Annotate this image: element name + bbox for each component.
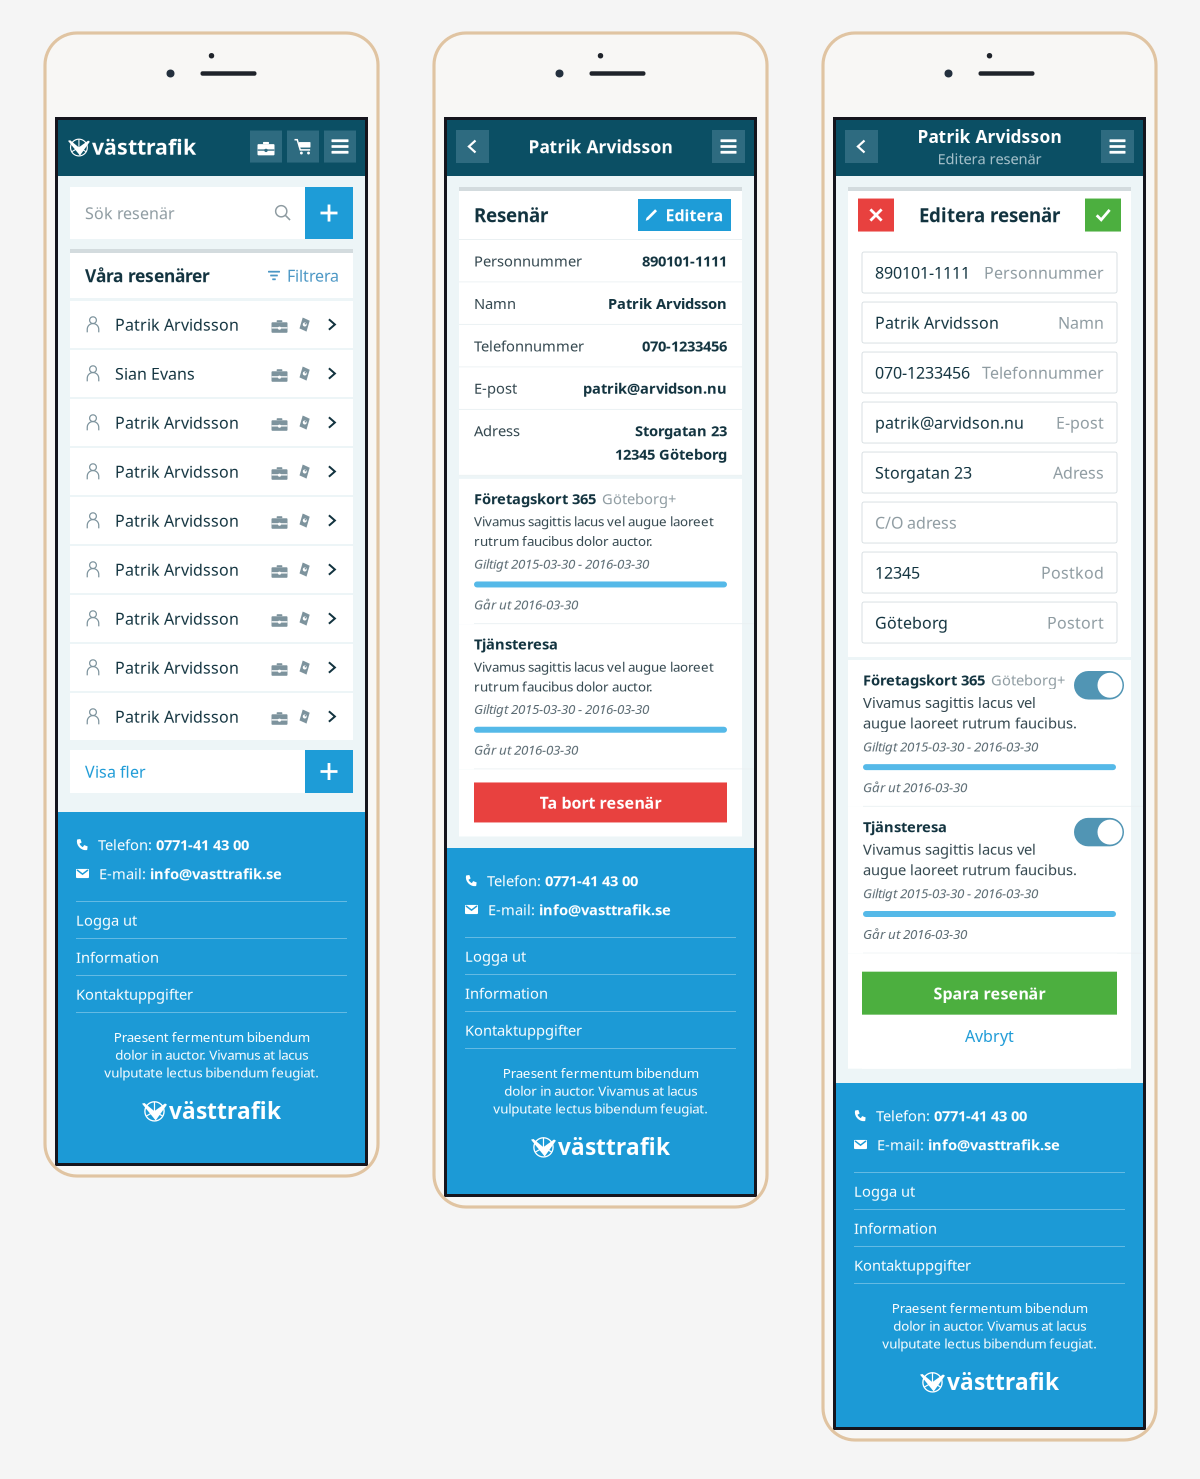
staticText: Editera <box>665 204 723 226</box>
button[interactable]: Patrik Arvidsson <box>70 693 353 740</box>
staticText: info@vasttrafik.se <box>539 900 671 919</box>
staticText: Telefonnummer <box>474 336 584 355</box>
button[interactable]: Kontaktuppgifter <box>76 976 347 1012</box>
staticText: västtrafik <box>169 1095 281 1125</box>
staticText: Logga ut <box>854 1181 915 1201</box>
button[interactable]: Varukorg <box>287 130 319 162</box>
button[interactable]: Meny <box>1101 130 1134 163</box>
staticText: E-mail: <box>488 900 539 919</box>
staticText: augue laoreet rutrum faucibus. <box>863 860 1077 879</box>
button[interactable]: Telefon: <box>76 830 347 859</box>
staticText: Kontaktuppgifter <box>76 984 193 1004</box>
staticText: Patrik Arvidsson <box>608 293 727 313</box>
button[interactable]: Patrik Arvidsson <box>862 302 1117 343</box>
button[interactable]: Information <box>465 975 736 1011</box>
staticText: Ta bort resenär <box>539 792 661 813</box>
button[interactable]: 890101-1111 <box>862 252 1117 293</box>
staticText: västtrafik <box>558 1131 670 1161</box>
button[interactable]: Företagskort <box>250 130 282 162</box>
button[interactable]: Logga ut <box>465 938 736 974</box>
staticText: Logga ut <box>465 946 526 966</box>
button[interactable]: Lägg till <box>305 750 353 793</box>
staticText: E-mail: <box>99 864 150 883</box>
staticText: C/O adress <box>875 512 957 533</box>
button[interactable]: Avbryt <box>858 198 894 231</box>
staticText: Patrik Arvidsson <box>115 657 239 678</box>
button[interactable]: Patrik Arvidsson <box>70 595 353 642</box>
staticText: Patrik Arvidsson <box>115 706 239 727</box>
button[interactable]: Ta bort resenär <box>474 782 727 822</box>
button[interactable]: Kontaktuppgifter <box>854 1247 1125 1283</box>
button[interactable]: Sian Evans <box>70 350 353 397</box>
staticText: Personnummer <box>984 262 1104 283</box>
button[interactable]: Tillbaka <box>845 130 878 163</box>
staticText: Vivamus sagittis lacus vel augue laoreet <box>474 658 714 675</box>
button[interactable]: Information <box>854 1210 1125 1246</box>
staticText: Patrik Arvidsson <box>115 608 239 629</box>
button[interactable]: Lägg till resenär <box>305 187 353 239</box>
button[interactable]: Filtrera <box>268 255 353 295</box>
staticText: Tjänsteresa <box>863 817 947 836</box>
button[interactable]: Telefon: <box>465 866 736 895</box>
staticText: Företagskort 365 <box>863 670 985 689</box>
button[interactable]: E-mail: <box>854 1130 1125 1159</box>
button[interactable]: Meny <box>324 130 356 162</box>
staticText: Patrik Arvidsson <box>115 314 239 335</box>
button[interactable]: Göteborg <box>862 602 1117 643</box>
button[interactable]: patrik@arvidson.nu <box>862 402 1117 443</box>
button[interactable]: Storgatan 23 <box>862 452 1117 493</box>
button[interactable]: Avbryt <box>862 1019 1117 1053</box>
button[interactable]: Telefon: <box>854 1101 1125 1130</box>
staticText: 0771-41 43 00 <box>156 835 249 854</box>
staticText: Telefonnummer <box>982 362 1104 383</box>
staticText: 12345 <box>875 562 920 583</box>
staticText: Avbryt <box>965 1025 1014 1046</box>
button[interactable]: E-mail: <box>465 895 736 924</box>
staticText: E-post <box>1056 412 1104 433</box>
staticText: Namn <box>474 293 516 313</box>
staticText: Kontaktuppgifter <box>465 1020 582 1040</box>
button[interactable]: Information <box>76 939 347 975</box>
button[interactable]: Logga ut <box>76 902 347 938</box>
staticText: 0771-41 43 00 <box>934 1106 1027 1125</box>
staticText: rutrum faucibus dolor auctor. <box>474 532 653 550</box>
button[interactable]: Patrik Arvidsson <box>70 448 353 495</box>
button[interactable]: Patrik Arvidsson <box>70 497 353 544</box>
button[interactable]: Spara <box>1085 198 1121 231</box>
staticText: Patrik Arvidsson <box>115 461 239 482</box>
staticText: Telefon: <box>876 1106 934 1125</box>
staticText: Göteborg+ <box>602 489 676 508</box>
button[interactable]: C/O adress <box>862 502 1117 543</box>
button[interactable]: Visa fler <box>70 750 305 793</box>
button[interactable]: Kontaktuppgifter <box>465 1012 736 1048</box>
button[interactable]: Patrik Arvidsson <box>70 399 353 446</box>
button[interactable]: 12345 <box>862 552 1117 593</box>
button[interactable]: Aktivera Tjänsteresa <box>1074 817 1138 846</box>
button[interactable]: E-mail: <box>76 859 347 888</box>
button[interactable]: Tillbaka <box>456 130 489 163</box>
staticText: Telefon: <box>487 871 545 890</box>
button[interactable]: Aktivera Företagskort 365 <box>1074 670 1138 699</box>
staticText: patrik@arvidson.nu <box>583 378 727 398</box>
button[interactable]: Editera <box>638 199 731 231</box>
button[interactable]: Logga ut <box>854 1173 1125 1209</box>
staticText: Vivamus sagittis lacus vel <box>863 839 1036 859</box>
staticText: Storgatan 23 <box>875 462 972 483</box>
staticText: Postort <box>1047 612 1104 633</box>
button[interactable]: Patrik Arvidsson <box>70 644 353 691</box>
staticText: Går ut 2016-03-30 <box>474 741 578 758</box>
button[interactable]: Spara resenär <box>862 972 1117 1015</box>
button[interactable]: Patrik Arvidsson <box>70 546 353 593</box>
staticText: Giltigt 2015-03-30 - 2016-03-30 <box>474 700 649 718</box>
button[interactable]: Meny <box>712 130 745 163</box>
button[interactable]: 070-1233456 <box>862 352 1117 393</box>
staticText: Praesent fermentum bibendum dolor in auc… <box>493 1064 708 1117</box>
staticText: E-post <box>474 378 517 398</box>
staticText: 890101-1111 <box>642 251 727 270</box>
staticText: Kontaktuppgifter <box>854 1255 971 1275</box>
staticText: 890101-1111 <box>875 262 970 283</box>
staticText: info@vasttrafik.se <box>928 1135 1060 1154</box>
staticText: Information <box>465 983 548 1003</box>
staticText: Information <box>76 947 159 967</box>
button[interactable]: Patrik Arvidsson <box>70 301 353 348</box>
